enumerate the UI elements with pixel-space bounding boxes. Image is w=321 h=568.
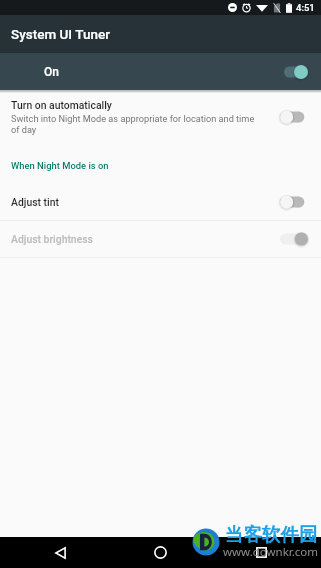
staticText: 当客软件园 bbox=[225, 523, 318, 546]
button[interactable]: On bbox=[0, 53, 321, 90]
staticText: Turn on automatically bbox=[11, 99, 112, 111]
staticText: System UI Tuner bbox=[11, 26, 110, 42]
button[interactable]: Adjust brightness bbox=[0, 221, 321, 257]
button[interactable]: System UI Tuner bbox=[0, 15, 321, 53]
staticText: Adjust brightness bbox=[11, 233, 93, 245]
staticText: www.downkr.com bbox=[223, 544, 319, 560]
button[interactable]: Home bbox=[133, 537, 187, 568]
staticText: When Night Mode is on bbox=[11, 160, 109, 171]
button[interactable]: Adjust tint bbox=[0, 184, 321, 220]
staticText: Switch into Night Mode as appropriate fo… bbox=[11, 113, 258, 135]
staticText: 4:51 bbox=[296, 2, 315, 13]
staticText: On bbox=[44, 65, 59, 79]
staticText: Adjust tint bbox=[11, 196, 59, 208]
button[interactable]: Turn on automatically bbox=[0, 90, 321, 143]
button[interactable]: Recent apps bbox=[234, 537, 288, 568]
button[interactable]: Back bbox=[33, 537, 87, 568]
